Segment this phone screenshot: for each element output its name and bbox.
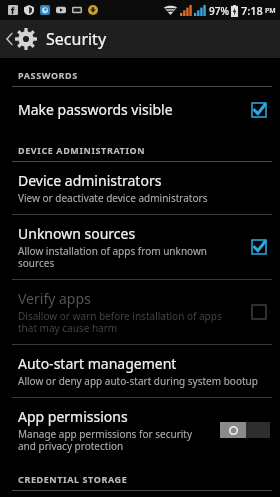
staticText: PASSWORDS: [18, 69, 78, 81]
staticText: PM: [265, 6, 276, 16]
staticText: Manage app permissions for security and …: [18, 427, 212, 453]
staticText: Disallow or warn before installation of …: [18, 309, 242, 335]
staticText: CREDENTIAL STORAGE: [18, 473, 128, 485]
button[interactable]: Device administrators: [0, 162, 280, 214]
staticText: 97%: [209, 4, 229, 18]
staticText: Allow installation of apps from unknown …: [18, 244, 242, 270]
button[interactable]: App permissions: [0, 398, 280, 462]
staticText: Security: [46, 28, 107, 50]
staticText: Verify apps: [18, 289, 91, 308]
staticText: 7:18: [241, 3, 263, 18]
staticText: DEVICE ADMINISTRATION: [18, 144, 146, 156]
staticText: App permissions: [18, 407, 128, 426]
button[interactable]: Navigate up: Security: [0, 20, 280, 58]
staticText: Device administrators: [18, 171, 162, 190]
button[interactable]: App permissions toggle, off: [220, 422, 270, 438]
button[interactable]: Unknown sources: [0, 215, 280, 279]
staticText: Unknown sources: [18, 224, 136, 243]
staticText: View or deactivate device administrators: [18, 191, 208, 205]
staticText: Allow or deny app auto-start during syst…: [18, 374, 258, 388]
button[interactable]: Auto-start management: [0, 345, 280, 397]
staticText: Make passwords visible: [18, 100, 173, 119]
staticText: Auto-start management: [18, 354, 177, 373]
button[interactable]: Make passwords visible: [0, 87, 280, 133]
button[interactable]: Verify apps: [0, 280, 280, 344]
